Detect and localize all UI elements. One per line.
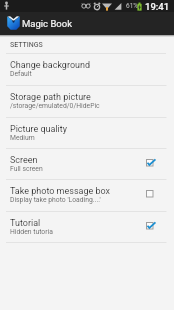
staticText: Hidden tutoria (10, 228, 53, 236)
staticText: /storage/emulated/0/HidePic (10, 102, 100, 110)
button[interactable]: Storage path picture (0, 86, 174, 118)
staticText: Medium (10, 134, 35, 142)
staticText: SETTINGS (10, 41, 43, 49)
staticText: Change background (10, 60, 91, 71)
button[interactable]: Picture quality (0, 118, 174, 149)
staticText: Full screen (10, 165, 43, 173)
button[interactable]: Unchecked (146, 189, 158, 201)
button[interactable]: Checked (146, 221, 158, 233)
staticText: Take photo message box (10, 186, 111, 197)
staticText: Picture quality (10, 124, 68, 135)
button[interactable]: Screen (0, 149, 174, 180)
button[interactable]: Checked (146, 158, 158, 170)
button[interactable]: Change background (0, 54, 174, 86)
staticText: Default (10, 70, 32, 78)
button[interactable]: Magic Book (0, 12, 174, 35)
staticText: 61% (126, 2, 139, 10)
button[interactable]: Take photo message box (0, 180, 174, 212)
staticText: 19:41 (145, 1, 170, 12)
staticText: Display take photo 'Loading....' (10, 196, 101, 204)
staticText: Tutorial (10, 218, 41, 229)
staticText: Storage path picture (10, 92, 91, 103)
staticText: Screen (10, 155, 38, 166)
button[interactable]: Tutorial (0, 212, 174, 243)
staticText: Magic Book (22, 18, 73, 29)
